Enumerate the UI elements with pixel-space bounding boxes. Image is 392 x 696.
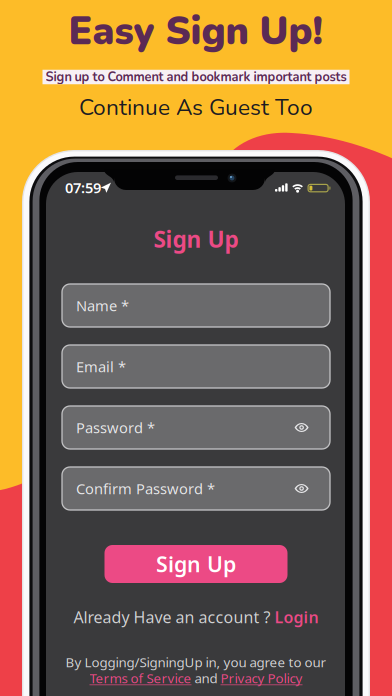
button[interactable]: Show password [0, 0, 392, 696]
staticText: Privacy Policy [220, 669, 302, 687]
staticText: Login [274, 606, 318, 628]
staticText: Sign Up [156, 550, 236, 578]
staticText: Sign up to Comment and bookmark importan… [45, 68, 346, 86]
staticText: Sign Up [153, 224, 238, 254]
button[interactable]: Show password [0, 0, 392, 696]
staticText: Terms of Service [89, 669, 191, 687]
staticText: Already Have an account ? [73, 606, 274, 628]
staticText: Email * [76, 357, 126, 376]
staticText: By Logging/SigningUp in, you agree to ou… [65, 653, 326, 671]
staticText: Confirm Password * [76, 479, 215, 498]
button[interactable]: Privacy Policy [220, 669, 302, 687]
staticText: Easy Sign Up! [68, 5, 323, 58]
staticText: 07:59 [65, 178, 101, 197]
button[interactable]: Terms of Service [89, 669, 191, 687]
staticText: Password * [76, 418, 155, 437]
button[interactable]: Login [274, 606, 318, 628]
staticText: Name * [76, 296, 129, 315]
staticText: Continue As Guest Too [79, 92, 313, 123]
staticText: and [191, 669, 220, 687]
button[interactable]: Sign Up [104, 545, 287, 583]
